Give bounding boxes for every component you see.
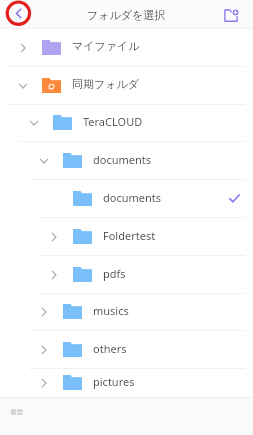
staticText: TeraCLOUD xyxy=(83,114,143,129)
staticText: others xyxy=(93,341,127,356)
button[interactable]: TeraCLOUD xyxy=(0,105,253,142)
staticText: 同期フォルダ xyxy=(72,77,140,91)
button[interactable]: pictures xyxy=(0,369,253,397)
button[interactable]: 同期フォルダ xyxy=(0,67,253,105)
button[interactable]: Create new folder xyxy=(220,4,242,26)
button[interactable]: Back xyxy=(4,0,33,29)
staticText: pdfs xyxy=(103,266,126,281)
button[interactable]: musics xyxy=(0,294,253,331)
staticText: Foldertest xyxy=(103,228,156,243)
button[interactable]: documents xyxy=(0,142,253,180)
button[interactable]: pdfs xyxy=(0,256,253,294)
staticText: documents xyxy=(103,190,162,205)
staticText: マイファイル xyxy=(72,39,140,53)
staticText: フォルダを選択 xyxy=(87,8,166,22)
button[interactable]: documents xyxy=(0,180,253,218)
button[interactable]: Foldertest xyxy=(0,218,253,256)
button[interactable]: マイファイル xyxy=(0,29,253,67)
button[interactable]: others xyxy=(0,331,253,369)
staticText: documents xyxy=(93,152,152,167)
staticText: musics xyxy=(93,303,129,318)
staticText: pictures xyxy=(93,374,135,389)
staticText: 履歴 xyxy=(10,408,23,416)
